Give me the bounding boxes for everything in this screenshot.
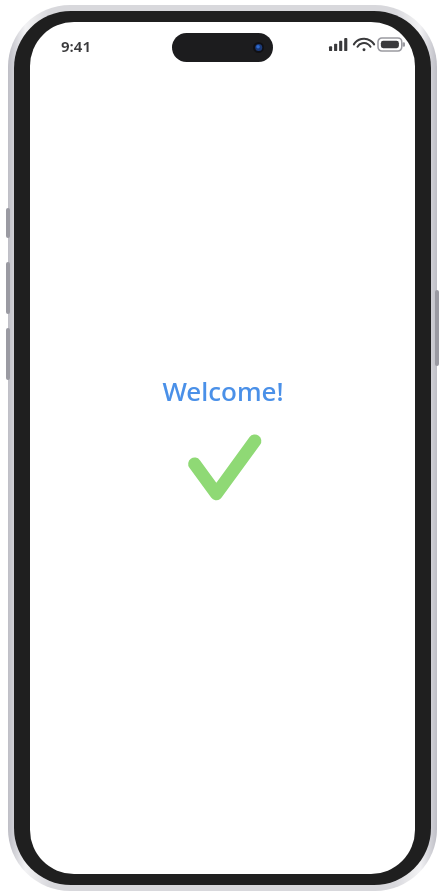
other: Volume up (6, 262, 10, 314)
other: Power (435, 290, 439, 366)
button[interactable]: Success checkmark (188, 434, 258, 500)
other: Mute switch (6, 208, 10, 238)
staticText: 9:41 (61, 36, 91, 56)
other: Volume down (6, 328, 10, 380)
button[interactable]: Welcome! (162, 373, 284, 408)
